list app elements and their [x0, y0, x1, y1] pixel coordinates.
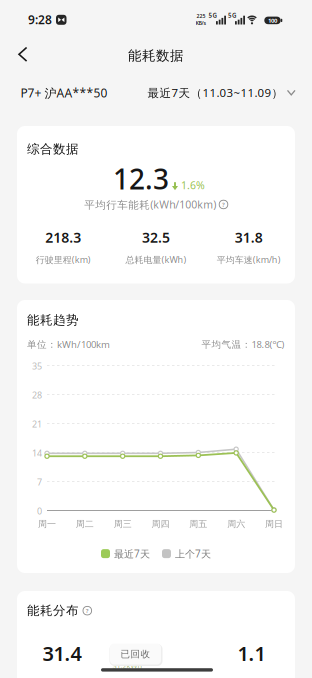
staticText: 31.8: [235, 228, 263, 247]
staticText: 14: [32, 447, 42, 459]
staticText: 225: [196, 13, 205, 19]
button[interactable]: Back: [9, 37, 37, 71]
staticText: 周日: [265, 518, 283, 530]
staticText: 0: [37, 505, 42, 517]
staticText: 最近7天（11.03~11.09）: [147, 85, 283, 100]
staticText: 单位：kWh/100km: [27, 338, 110, 351]
staticText: 最近7天: [114, 547, 150, 560]
staticText: 周五: [189, 518, 207, 530]
staticText: 周二: [76, 518, 94, 530]
staticText: 9:28: [28, 11, 52, 27]
staticText: 已回收: [120, 648, 150, 660]
staticText: 12.3: [113, 160, 169, 197]
staticText: 218.3: [45, 228, 81, 247]
staticText: 31.4: [42, 640, 81, 667]
staticText: 行驶里程(km): [36, 254, 91, 266]
staticText: P7+ 沪AA***50: [20, 85, 107, 101]
staticText: 5G: [228, 11, 237, 19]
staticText: 能耗分布: [27, 603, 79, 618]
staticText: 平均车速(km/h): [217, 254, 281, 266]
staticText: 35: [32, 360, 42, 372]
staticText: 上个7天: [175, 547, 211, 560]
staticText: 周三: [114, 518, 132, 530]
staticText: 31.2kWh: [112, 660, 142, 670]
staticText: 周一: [38, 518, 56, 530]
button[interactable]: 最近7天（11.03~11.09）: [147, 85, 295, 100]
staticText: 21: [32, 418, 42, 430]
staticText: 周六: [227, 518, 245, 530]
staticText: 1.1: [237, 640, 265, 667]
staticText: 5G: [208, 11, 217, 19]
staticText: 1.6%: [181, 178, 205, 192]
staticText: 总耗电量(kWh): [125, 254, 186, 266]
staticText: 平均气温：18.8(℃): [201, 338, 284, 351]
staticText: 周四: [151, 518, 169, 530]
staticText: 能耗趋势: [27, 312, 79, 328]
staticText: 综合数据: [27, 141, 79, 157]
staticText: 7: [37, 476, 42, 488]
staticText: ?: [86, 607, 89, 615]
button[interactable]: About energy distribution: [83, 606, 92, 615]
staticText: 平均行车能耗(kWh/100km): [84, 197, 216, 211]
button[interactable]: About average driving consumption: [219, 200, 228, 209]
staticText: 28: [32, 389, 42, 401]
staticText: 能耗数据: [128, 47, 184, 64]
staticText: 32.5: [142, 228, 170, 247]
staticText: KB/s: [195, 19, 206, 26]
staticText: ?: [222, 200, 225, 208]
staticText: 100: [268, 16, 277, 24]
